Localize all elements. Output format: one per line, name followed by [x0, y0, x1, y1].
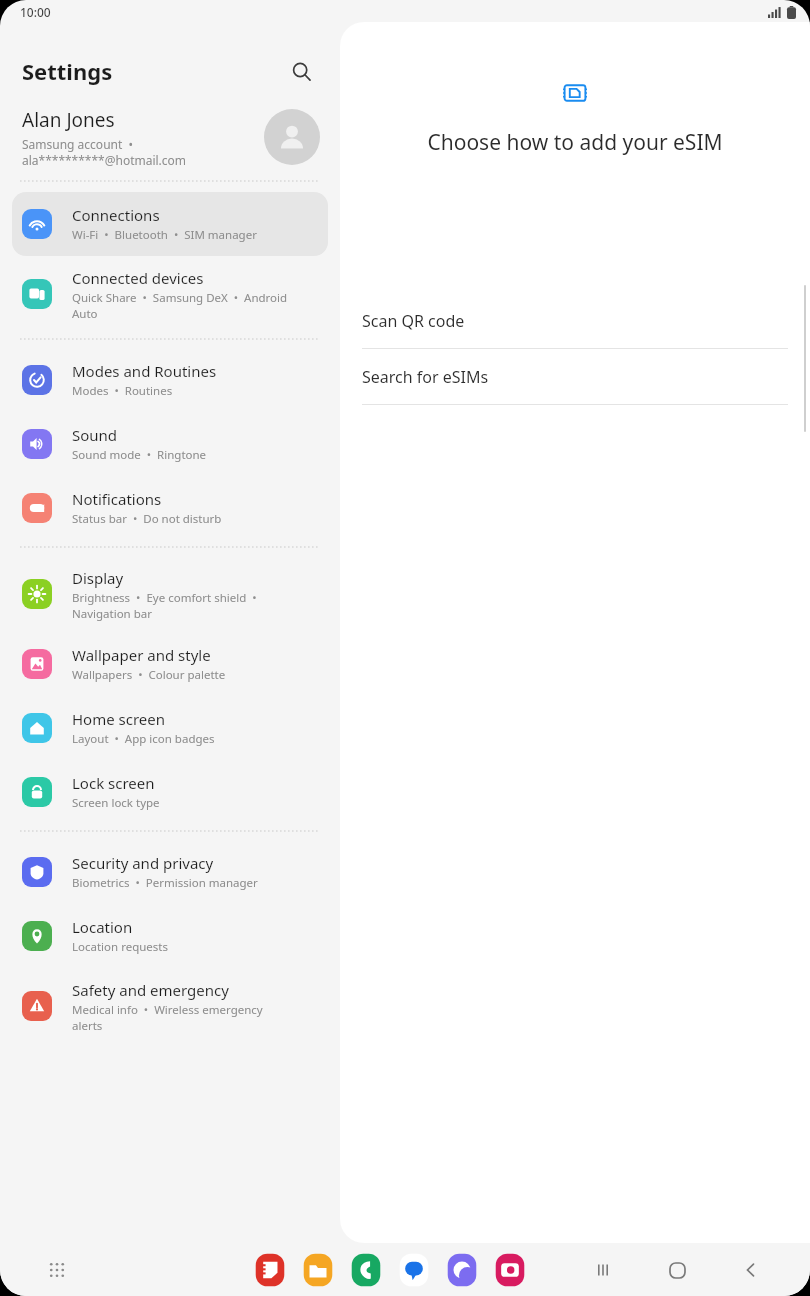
staticText: Wi-Fi • Bluetooth • SIM manager — [72, 227, 257, 243]
staticText: Samsung account • — [22, 136, 134, 152]
staticText: ala**********@hotmail.com — [22, 152, 187, 168]
staticText: Layout • App icon badges — [72, 731, 215, 747]
button[interactable]: Home screen — [12, 696, 328, 760]
staticText: Scan QR code — [362, 310, 465, 332]
button[interactable]: Security and privacy — [12, 840, 328, 904]
staticText: Security and privacy — [72, 853, 214, 873]
staticText: Modes and Routines — [72, 361, 217, 381]
button[interactable]: Connected devices — [12, 256, 328, 332]
button[interactable]: camera — [492, 1252, 528, 1288]
staticText: Brightness • Eye comfort shield • Naviga… — [72, 590, 257, 621]
staticText: Alan Jones — [22, 107, 115, 133]
staticText: Sound mode • Ringtone — [72, 447, 207, 463]
staticText: Display — [72, 568, 124, 588]
button[interactable]: Alan Jones — [22, 96, 320, 178]
button[interactable]: Search for eSIMs — [340, 349, 810, 405]
staticText: 10:00 — [20, 4, 51, 20]
staticText: Choose how to add your eSIM — [340, 128, 810, 157]
button[interactable]: Recent apps — [586, 1253, 620, 1287]
button[interactable]: Back — [734, 1253, 768, 1287]
staticText: Quick Share • Samsung DeX • Android Auto — [72, 290, 288, 321]
staticText: Wallpapers • Colour palette — [72, 667, 226, 683]
button[interactable]: messages — [396, 1252, 432, 1288]
button[interactable]: files — [300, 1252, 336, 1288]
staticText: Home screen — [72, 709, 166, 729]
staticText: Connections — [72, 205, 160, 225]
button[interactable]: Home — [660, 1253, 694, 1287]
button[interactable]: Display — [12, 556, 328, 632]
button[interactable]: Wallpaper and style — [12, 632, 328, 696]
button[interactable]: Lock screen — [12, 760, 328, 824]
button[interactable]: Connections — [12, 192, 328, 256]
staticText: Medical info • Wireless emergency alerts — [72, 1002, 263, 1033]
button[interactable]: Location — [12, 904, 328, 968]
staticText: Settings — [22, 56, 113, 86]
button[interactable]: Scan QR code — [340, 293, 810, 349]
staticText: Biometrics • Permission manager — [72, 875, 258, 891]
button[interactable]: Search — [282, 52, 320, 90]
staticText: Safety and emergency — [72, 980, 229, 1000]
staticText: Lock screen — [72, 773, 155, 793]
staticText: Location — [72, 917, 133, 937]
button[interactable]: Safety and emergency — [12, 968, 328, 1044]
staticText: Search for eSIMs — [362, 366, 489, 388]
staticText: Wallpaper and style — [72, 645, 211, 665]
staticText: Sound — [72, 425, 118, 445]
button[interactable]: All apps — [40, 1253, 74, 1287]
button[interactable]: Modes and Routines — [12, 348, 328, 412]
staticText: Screen lock type — [72, 795, 160, 811]
staticText: Status bar • Do not disturb — [72, 511, 222, 527]
staticText: Notifications — [72, 489, 162, 509]
button[interactable]: phone — [348, 1252, 384, 1288]
button[interactable]: Notifications — [12, 476, 328, 540]
button[interactable]: notes — [252, 1252, 288, 1288]
button[interactable]: Sound — [12, 412, 328, 476]
staticText: Modes • Routines — [72, 383, 173, 399]
button[interactable]: internet — [444, 1252, 480, 1288]
staticText: Connected devices — [72, 268, 204, 288]
staticText: Location requests — [72, 939, 168, 955]
